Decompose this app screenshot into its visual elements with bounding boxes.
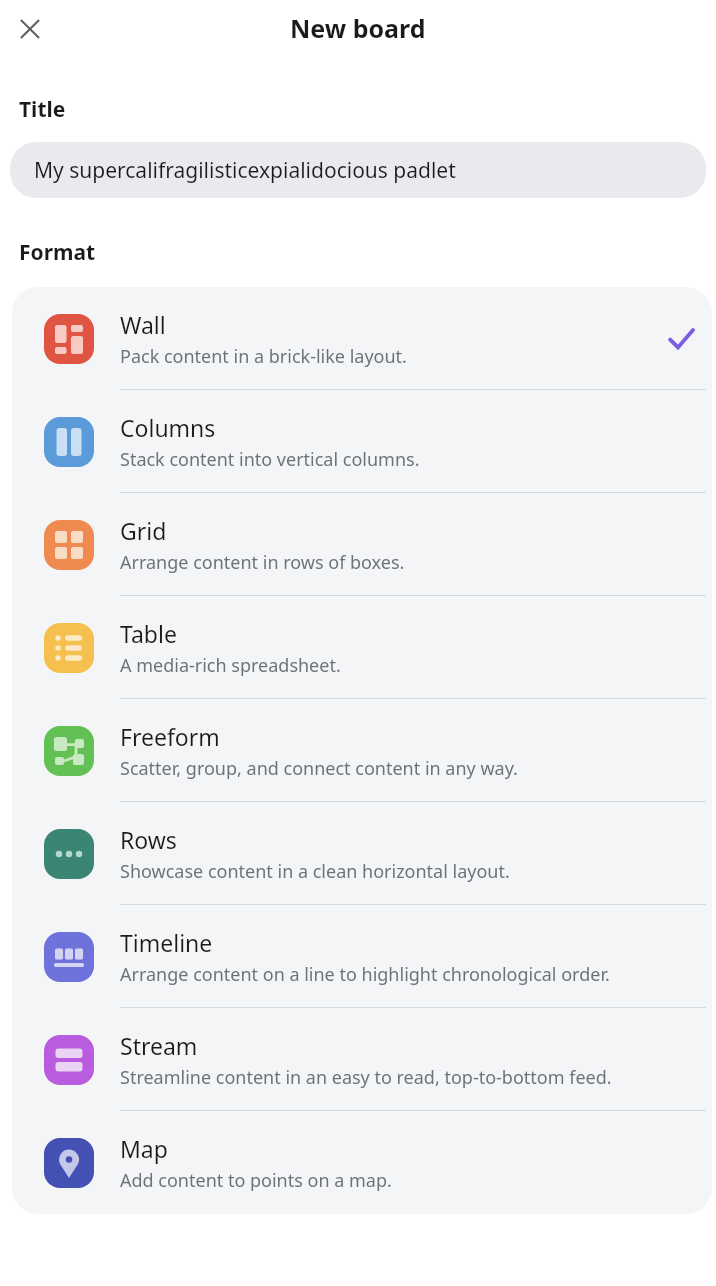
button[interactable]: Table — [12, 596, 712, 699]
staticText: Scatter, group, and connect content in a… — [120, 756, 518, 781]
staticText: Format — [19, 238, 96, 267]
staticText: Showcase content in a clean horizontal l… — [120, 859, 510, 884]
staticText: Add content to points on a map. — [120, 1168, 392, 1193]
staticText: Freeform — [120, 721, 220, 752]
button[interactable]: Freeform — [12, 699, 712, 802]
staticText: Pack content in a brick-like layout. — [120, 344, 407, 369]
button[interactable]: Grid — [12, 493, 712, 596]
staticText: Stack content into vertical columns. — [120, 447, 420, 472]
staticText: Rows — [120, 824, 177, 855]
staticText: Streamline content in an easy to read, t… — [120, 1065, 612, 1090]
staticText: Arrange content on a line to highlight c… — [120, 962, 610, 987]
staticText: Timeline — [120, 927, 213, 958]
staticText: Grid — [120, 515, 167, 546]
button[interactable]: Wall — [12, 287, 712, 390]
staticText: Table — [120, 618, 177, 649]
staticText: New board — [290, 11, 426, 45]
button[interactable]: Columns — [12, 390, 712, 493]
button[interactable]: Timeline — [12, 905, 712, 1008]
button[interactable]: Rows — [12, 802, 712, 905]
button[interactable]: Stream — [12, 1008, 712, 1111]
button[interactable]: My supercalifragilisticexpialidocious pa… — [10, 142, 706, 198]
staticText: Stream — [120, 1030, 198, 1061]
staticText: Title — [19, 95, 66, 124]
button[interactable]: Close — [8, 7, 52, 51]
staticText: Columns — [120, 412, 216, 443]
staticText: My supercalifragilisticexpialidocious pa… — [34, 156, 456, 185]
staticText: Arrange content in rows of boxes. — [120, 550, 405, 575]
staticText: A media-rich spreadsheet. — [120, 653, 341, 678]
staticText: Map — [120, 1133, 168, 1164]
staticText: Wall — [120, 309, 166, 340]
button[interactable]: Map — [12, 1111, 712, 1214]
